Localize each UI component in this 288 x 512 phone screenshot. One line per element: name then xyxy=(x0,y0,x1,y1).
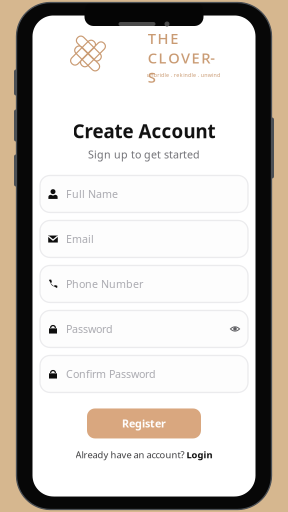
staticText: unbridle . rekindle . unwind xyxy=(147,71,220,78)
button[interactable]: Register xyxy=(87,408,201,438)
button[interactable]: Full Name xyxy=(40,175,248,212)
staticText: Login xyxy=(186,448,212,461)
staticText: Register xyxy=(122,416,166,431)
button[interactable]: Email xyxy=(40,220,248,257)
staticText: Password xyxy=(66,322,113,336)
staticText: THE CLOVERS xyxy=(148,28,220,67)
staticText: Already have an account? xyxy=(75,448,186,461)
button[interactable]: Phone Number xyxy=(40,265,248,302)
staticText: Create Account xyxy=(72,118,215,143)
button[interactable]: Login xyxy=(186,448,212,461)
button[interactable]: Confirm Password xyxy=(40,355,248,392)
staticText: Confirm Password xyxy=(66,367,156,381)
staticText: Full Name xyxy=(66,187,118,201)
staticText: Sign up to get started xyxy=(88,147,200,161)
button[interactable]: Password xyxy=(40,310,248,347)
staticText: Email xyxy=(66,232,94,246)
staticText: Phone Number xyxy=(66,277,143,291)
